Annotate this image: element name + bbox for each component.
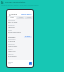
staticText: Do eiusmod tempor — [8, 32, 22, 34]
staticText: Lorem — [19, 17, 23, 19]
staticText: Lorem Consectetur — [5, 1, 26, 4]
staticText: Ea commodo — [8, 56, 17, 58]
button[interactable]: Aliquip ex — [8, 54, 32, 58]
staticText: Aliquip ex — [8, 54, 14, 56]
staticText: Laboris nisi — [8, 51, 16, 53]
staticText: Veniam quis — [8, 44, 15, 46]
staticText: Incididunt — [8, 36, 16, 38]
staticText: Lorem — [11, 13, 18, 16]
staticText: Ullamco — [8, 49, 13, 51]
button[interactable]: Lorem — [17, 17, 24, 19]
button[interactable]: Submit — [29, 62, 32, 65]
staticText: Consectetur — [8, 25, 15, 27]
button[interactable]: Back — [8, 13, 11, 16]
button[interactable]: Lorem — [8, 17, 16, 19]
staticText: Lorem ipsum dolor sit amet consectetur — [1, 4, 39, 7]
button[interactable]: Veniam quis — [8, 44, 32, 48]
staticText: Lorem — [27, 17, 31, 19]
button[interactable]: Magna aliqua — [8, 39, 32, 43]
button[interactable]: Ullamco — [8, 49, 32, 53]
button[interactable]: Elit sed — [8, 30, 32, 34]
staticText: Nostrud exerc — [8, 46, 18, 48]
button[interactable]: Lorem — [25, 17, 32, 19]
staticText: Ut labore — [25, 36, 31, 38]
staticText: Lorem ipsum — [8, 20, 16, 22]
button[interactable]: Ipsum dolor — [21, 13, 32, 15]
staticText: Ut enim ad — [8, 41, 16, 43]
button[interactable]: Lorem ipsum — [8, 20, 32, 24]
staticText: Magna aliqua — [8, 39, 16, 41]
button[interactable]: Ut labore — [24, 36, 32, 38]
staticText: Adipiscing — [8, 27, 15, 29]
staticText: Lorem — [10, 17, 14, 19]
staticText: Dolor sit amet — [8, 22, 18, 24]
staticText: Elit sed — [8, 30, 12, 32]
staticText: Ipsum dolor — [21, 13, 32, 15]
button[interactable]: Consectetur — [8, 25, 32, 29]
